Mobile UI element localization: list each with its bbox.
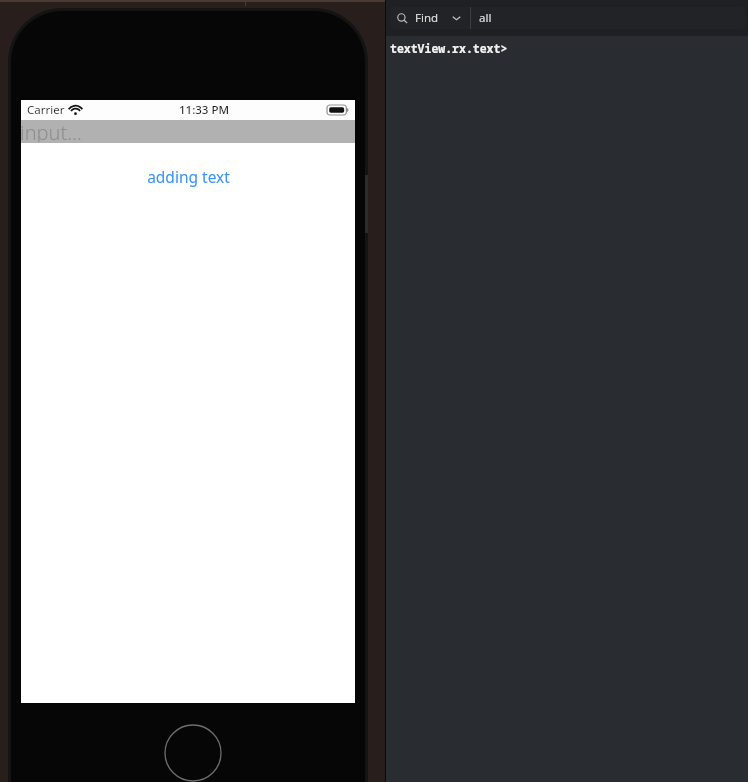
staticText: adding text	[147, 166, 230, 187]
staticText: textView.rx.text>	[390, 41, 508, 57]
staticText: Find	[415, 10, 439, 26]
staticText: Carrier	[27, 102, 65, 118]
staticText: input...	[20, 119, 82, 142]
staticText: 11:33 PM	[179, 102, 230, 118]
staticText: all	[479, 10, 492, 26]
button[interactable]: Home	[164, 724, 222, 782]
other: Search	[397, 13, 408, 24]
button[interactable]: Search	[390, 7, 746, 29]
button[interactable]: input...	[21, 120, 355, 143]
